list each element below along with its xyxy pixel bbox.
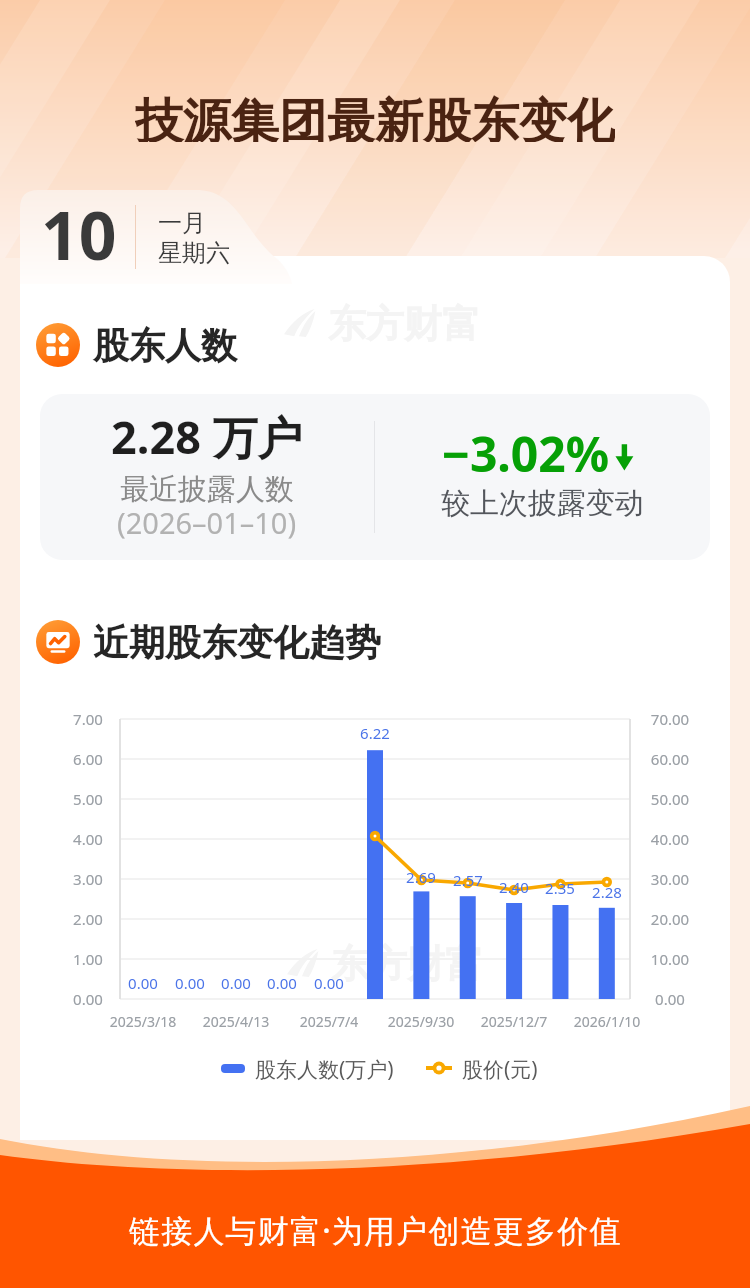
staticText: −3.02% xyxy=(442,421,610,486)
staticText: 50.00 xyxy=(600,789,740,809)
staticText: 2025/3/18 xyxy=(73,1012,213,1031)
staticText: 4.00 xyxy=(18,829,158,849)
staticText: 1.00 xyxy=(18,949,158,969)
staticText: 0.00 xyxy=(166,973,306,993)
staticText: 东方财富 xyxy=(331,940,483,984)
staticText: 30.00 xyxy=(600,869,740,889)
staticText: 最近披露人数 xyxy=(120,471,294,508)
staticText: 20.00 xyxy=(600,909,740,929)
button[interactable]: 股东人数 xyxy=(36,321,237,369)
staticText: 2.28 xyxy=(537,882,677,902)
staticText: 7.00 xyxy=(18,709,158,729)
staticText: 股价(元) xyxy=(462,1055,538,1081)
staticText: 星期六 xyxy=(158,238,230,268)
staticText: 40.00 xyxy=(600,829,740,849)
staticText: 0.00 xyxy=(73,973,213,993)
staticText: 2.69 xyxy=(351,867,491,887)
staticText: 0.00 xyxy=(600,989,740,1009)
staticText: 2.40 xyxy=(444,877,584,897)
staticText: 60.00 xyxy=(600,749,740,769)
staticText: 2025/4/13 xyxy=(166,1012,306,1031)
staticText: 70.00 xyxy=(600,709,740,729)
staticText: 0.00 xyxy=(120,973,260,993)
staticText: 2025/9/30 xyxy=(351,1012,491,1031)
staticText: 较上次披露变动 xyxy=(441,485,644,522)
staticText: 股东人数 xyxy=(93,323,237,368)
staticText: (2026–01–10) xyxy=(117,503,297,542)
staticText: 6.00 xyxy=(18,749,158,769)
staticText: 链接人与财富·为用户创造更多价值 xyxy=(129,1209,622,1251)
staticText: 2026/1/10 xyxy=(537,1012,677,1031)
staticText: 2.28 万户 xyxy=(111,406,303,467)
staticText: 3.00 xyxy=(18,869,158,889)
staticText: 股东人数(万户) xyxy=(255,1055,394,1081)
button[interactable]: 10 xyxy=(20,190,280,284)
staticText: 2025/12/7 xyxy=(444,1012,584,1031)
staticText: 10.00 xyxy=(600,949,740,969)
staticText: 10 xyxy=(41,189,117,279)
staticText: 0.00 xyxy=(259,973,399,993)
staticText: 0.00 xyxy=(18,989,158,1009)
staticText: 2025/7/4 xyxy=(259,1012,399,1031)
staticText: 近期股东变化趋势 xyxy=(93,620,381,665)
staticText: 5.00 xyxy=(18,789,158,809)
button[interactable]: 近期股东变化趋势 xyxy=(36,618,381,666)
staticText: 技源集团最新股东变化 xyxy=(135,92,615,142)
staticText: 6.22 xyxy=(305,723,445,743)
staticText: 2.00 xyxy=(18,909,158,929)
staticText: 一月 xyxy=(158,208,206,238)
staticText: 东方财富 xyxy=(328,300,480,344)
staticText: 2.35 xyxy=(490,878,630,898)
staticText: 2.57 xyxy=(398,870,538,890)
staticText: 0.00 xyxy=(212,973,352,993)
